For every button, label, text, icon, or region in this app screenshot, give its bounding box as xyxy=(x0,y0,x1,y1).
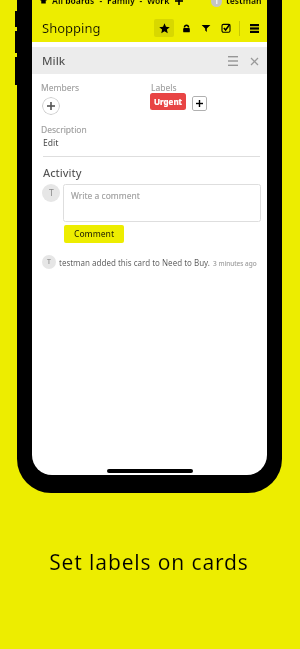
button[interactable]: All boards xyxy=(52,0,95,7)
button[interactable]: Menu xyxy=(245,19,263,37)
button[interactable]: Card actions xyxy=(225,53,241,69)
staticText: - xyxy=(135,0,147,7)
staticText: - xyxy=(95,0,107,7)
staticText: T xyxy=(47,257,51,267)
staticText: Milk xyxy=(42,53,66,69)
button[interactable]: Urgent xyxy=(150,93,186,110)
staticText: Urgent xyxy=(154,96,183,107)
staticText: T xyxy=(215,0,219,6)
staticText: Comment xyxy=(74,228,115,240)
button[interactable]: Filter xyxy=(197,19,215,37)
staticText: Set labels on cards xyxy=(49,548,249,577)
button[interactable]: Family xyxy=(107,0,135,7)
button[interactable]: Starred board xyxy=(154,19,174,37)
button[interactable]: Add board xyxy=(175,0,183,5)
button[interactable]: Work xyxy=(147,0,170,7)
button[interactable]: Write a comment xyxy=(63,184,261,222)
button[interactable]: Close xyxy=(246,53,262,69)
staticText: testman added this card to Need to Buy. xyxy=(59,257,210,268)
staticText: Write a comment xyxy=(71,190,140,202)
button[interactable]: Comment xyxy=(64,225,124,243)
staticText: testman xyxy=(226,0,262,7)
button[interactable]: Private board xyxy=(177,19,195,37)
staticText: T xyxy=(49,187,54,199)
staticText: Labels xyxy=(151,82,177,94)
button[interactable]: Add label xyxy=(192,96,207,111)
staticText: Members xyxy=(41,82,80,94)
staticText: Description xyxy=(41,124,87,136)
button[interactable]: Add member xyxy=(42,97,60,115)
button[interactable]: Checklist xyxy=(217,19,235,37)
staticText: 3 minutes ago xyxy=(213,259,257,268)
staticText: Activity xyxy=(43,165,82,180)
button[interactable]: Edit xyxy=(43,137,59,149)
staticText: Shopping xyxy=(42,19,101,37)
